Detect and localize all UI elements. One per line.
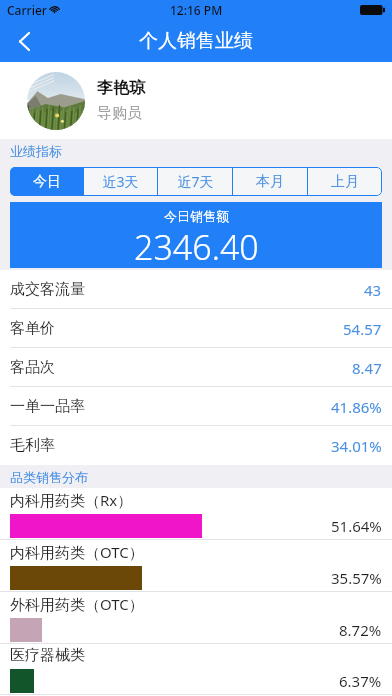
button[interactable]: 8.72% [0,615,392,644]
staticText: 本月 [256,173,284,191]
staticText: 上月 [331,173,359,191]
button[interactable]: 一单一品率 [0,387,392,426]
staticText: 12:16 PM [170,2,223,18]
staticText: 客品次 [10,358,55,377]
staticText: 43 [364,280,382,300]
button[interactable]: 今日 [10,167,83,196]
staticText: 8.72% [339,620,382,640]
button[interactable]: 今日销售额 [10,202,382,268]
button[interactable]: 6.37% [0,666,392,695]
staticText: 6.37% [339,671,382,691]
button[interactable]: 上月 [308,167,382,196]
staticText: 业绩指标 [10,143,62,159]
button[interactable]: 毛利率 [0,426,392,465]
button[interactable]: 近7天 [158,167,232,196]
staticText: 内科用药类（Rx） [10,490,133,510]
staticText: 毛利率 [10,436,55,455]
staticText: 客单价 [10,319,55,338]
staticText: 51.64% [331,516,382,536]
staticText: 54.57 [343,319,382,339]
staticText: 35.57% [331,568,382,588]
button[interactable]: 51.64% [0,511,392,540]
staticText: 8.47 [352,358,382,378]
staticText: 品类销售分布 [10,469,88,485]
staticText: 内科用药类（OTC） [10,542,144,562]
staticText: 李艳琼 [97,78,145,98]
button[interactable]: 成交客流量 [0,270,392,309]
staticText: 个人销售业绩 [139,29,253,53]
staticText: 34.01% [331,436,382,456]
staticText: 医疗器械类 [10,646,85,665]
button[interactable]: 客品次 [0,348,392,387]
button[interactable]: 近3天 [84,167,157,196]
button[interactable]: Back [0,20,48,62]
button[interactable]: 35.57% [0,563,392,592]
staticText: 今日销售额 [164,208,229,224]
staticText: 今日 [33,173,61,191]
staticText: 41.86% [331,397,382,417]
staticText: 近7天 [177,172,214,191]
staticText: 外科用药类（OTC） [10,594,144,614]
staticText: 成交客流量 [10,280,85,299]
staticText: 一单一品率 [10,397,85,416]
staticText: 导购员 [97,104,142,123]
button[interactable]: 李艳琼 [0,62,392,139]
staticText: 近3天 [102,172,139,191]
staticText: 2346.40 [134,224,259,268]
staticText: Carrier [7,2,47,18]
button[interactable]: 本月 [233,167,307,196]
button[interactable]: 客单价 [0,309,392,348]
